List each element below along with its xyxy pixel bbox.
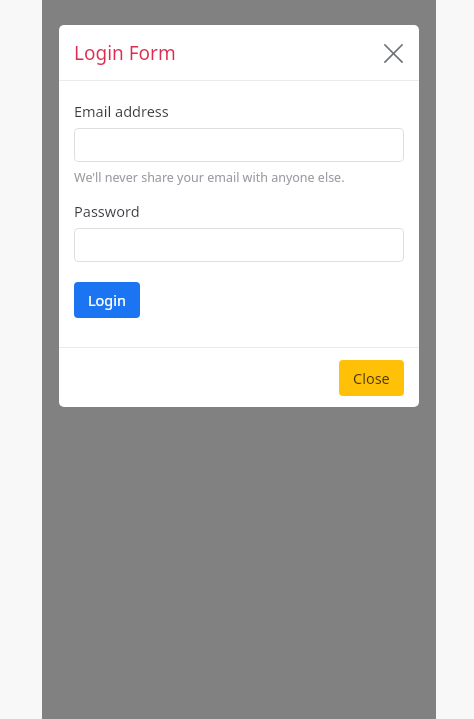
button[interactable]: Close dialog: [375, 35, 411, 71]
button[interactable]: Close: [339, 360, 404, 396]
button[interactable]: Login: [74, 282, 140, 318]
staticText: Login Form: [74, 40, 176, 66]
staticText: Email address: [74, 101, 169, 121]
staticText: Close: [353, 368, 390, 388]
staticText: Password: [74, 201, 140, 221]
staticText: Login: [88, 290, 126, 310]
button[interactable]: [74, 128, 404, 162]
staticText: We'll never share your email with anyone…: [74, 169, 345, 186]
button[interactable]: [74, 228, 404, 262]
